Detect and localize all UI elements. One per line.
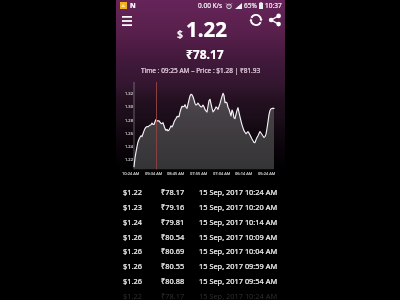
staticText: $1.26 (123, 261, 142, 271)
button[interactable]: $1.26 (116, 258, 285, 273)
staticText: $1.23 (123, 202, 142, 212)
staticText: 1.32 (125, 91, 133, 96)
staticText: $1.22 (123, 187, 142, 197)
staticText: 15 Sep, 2017 10:24 AM (199, 291, 278, 300)
staticText: 15 Sep, 2017 10:24 AM (199, 187, 278, 197)
staticText: 15 Sep, 2017 10:14 AM (199, 217, 278, 227)
button[interactable]: $1.26 (116, 243, 285, 258)
button[interactable]: $1.26 (116, 273, 285, 288)
staticText: 15 Sep, 2017 10:20 AM (199, 202, 278, 212)
staticText: 08:45 AM (167, 171, 185, 176)
staticText: $1.22 (123, 291, 142, 300)
button[interactable]: $1.24 (116, 214, 285, 229)
staticText: $1.26 (123, 246, 142, 256)
staticText: ₹80.88 (161, 276, 185, 286)
staticText: 1.26 (125, 131, 133, 136)
staticText: ₹80.69 (161, 246, 185, 256)
staticText: $1.24 (123, 217, 142, 227)
staticText: ₹78.17 (161, 187, 185, 197)
button[interactable]: $1.23 (116, 199, 285, 214)
staticText: 10:37 (265, 1, 282, 10)
staticText: ₹78.17 (161, 291, 185, 300)
staticText: 1.22 (125, 157, 133, 162)
button[interactable]: Share (266, 11, 284, 29)
staticText: N (130, 1, 136, 11)
staticText: 1.30 (125, 104, 133, 109)
staticText: ₹79.16 (161, 202, 185, 212)
staticText: ₹80.55 (161, 261, 185, 271)
staticText: 65% (244, 1, 257, 10)
staticText: $1.26 (123, 276, 142, 286)
staticText: 05:24 AM (258, 171, 276, 176)
button[interactable]: Refresh (247, 11, 265, 29)
staticText: 07:55 AM (190, 171, 208, 176)
staticText: 0.00 K/s (198, 1, 223, 10)
staticText: 1.22 (186, 15, 227, 43)
staticText: 15 Sep, 2017 09:54 AM (199, 276, 278, 286)
staticText: ₹80.54 (161, 232, 185, 242)
staticText: 06:14 AM (235, 171, 253, 176)
staticText: 09:34 AM (145, 171, 163, 176)
staticText: 15 Sep, 2017 10:09 AM (199, 232, 278, 242)
button[interactable]: $1.22 (116, 184, 285, 199)
button[interactable]: $1.22 (116, 288, 285, 300)
staticText: ₹78.17 (186, 46, 224, 62)
staticText: 07:04 AM (213, 171, 231, 176)
staticText: Time : 09:25 AM – Price : $1.28 | ₹81.93 (141, 66, 261, 75)
staticText: $ (177, 27, 184, 41)
button[interactable]: $1.26 (116, 229, 285, 244)
staticText: ₹79.81 (161, 217, 185, 227)
staticText: 1.28 (125, 118, 133, 123)
staticText: 1.24 (125, 144, 133, 149)
staticText: 15 Sep, 2017 10:04 AM (199, 246, 278, 256)
staticText: $1.26 (123, 232, 142, 242)
button[interactable]: Open navigation menu (118, 12, 136, 30)
staticText: 10:24 AM (122, 171, 140, 176)
staticText: 15 Sep, 2017 09:59 AM (199, 261, 278, 271)
